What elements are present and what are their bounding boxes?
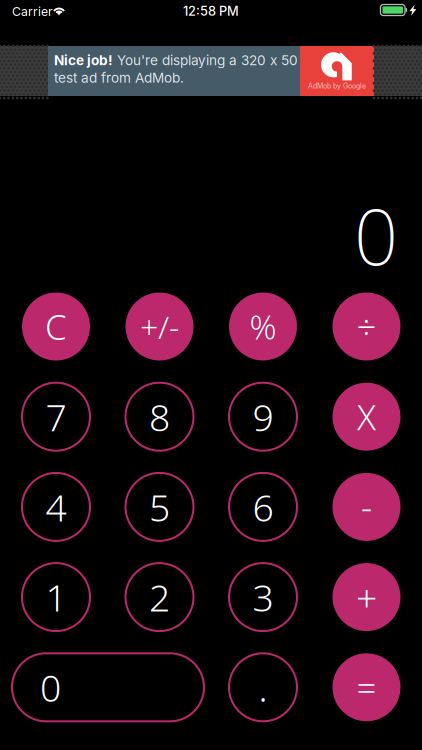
button[interactable]: 8 [125, 383, 193, 451]
button[interactable]: 4 [22, 473, 90, 541]
button[interactable]: 1 [22, 563, 90, 631]
staticText: Nice job! [54, 52, 113, 68]
staticText: 7 [45, 392, 66, 441]
staticText: % [249, 304, 276, 349]
button[interactable]: 5 [125, 473, 193, 541]
staticText: test ad from AdMob. [54, 69, 184, 86]
staticText: . [258, 662, 267, 712]
staticText: ÷ [356, 303, 376, 349]
staticText: Carrier [12, 4, 53, 19]
staticText: 4 [45, 482, 66, 532]
button[interactable]: C [22, 292, 90, 360]
staticText: 9 [252, 392, 273, 441]
staticText: 0 [354, 184, 398, 286]
staticText: 3 [252, 572, 273, 622]
button[interactable]: 9 [229, 383, 297, 451]
staticText: 2 [149, 572, 170, 622]
staticText: You're displaying a 320 ​x​ 50 [113, 52, 298, 68]
staticText: 8 [149, 392, 170, 441]
staticText: C [45, 303, 67, 349]
button[interactable]: ÷ [332, 292, 400, 360]
button[interactable]: 0 [12, 653, 204, 721]
button[interactable]: 2 [125, 563, 193, 631]
staticText: 6 [252, 482, 273, 532]
staticText: 1 [45, 572, 66, 622]
button[interactable]: +/- [125, 292, 193, 360]
button[interactable]: 3 [229, 563, 297, 631]
staticText: X [357, 394, 376, 440]
staticText: 5 [149, 482, 170, 532]
staticText: +/- [140, 305, 179, 348]
staticText: + [356, 572, 377, 622]
button[interactable]: + [332, 563, 400, 631]
button[interactable]: = [332, 653, 400, 721]
staticText: - [361, 484, 372, 530]
staticText: AdMob by Google [308, 82, 366, 90]
button[interactable]: 6 [229, 473, 297, 541]
staticText: 0 [40, 662, 61, 712]
staticText: = [356, 664, 376, 710]
button[interactable]: X [332, 383, 400, 451]
button[interactable]: . [229, 653, 297, 721]
button[interactable]: - [332, 473, 400, 541]
staticText: 12:58 PM [183, 3, 239, 19]
button[interactable]: 7 [22, 383, 90, 451]
button[interactable]: % [229, 292, 297, 360]
